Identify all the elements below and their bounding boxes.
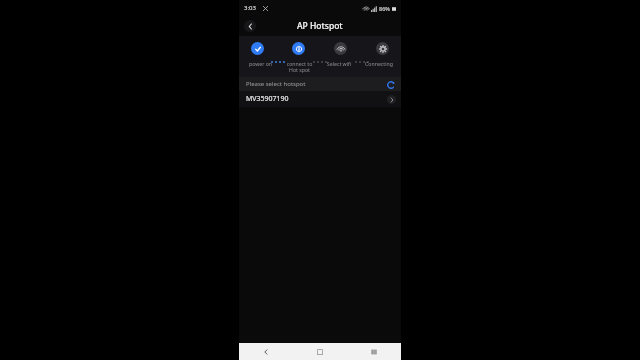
button[interactable]: Back (244, 20, 256, 32)
staticText: power on (241, 60, 280, 67)
staticText: AP Hotspot (297, 20, 343, 32)
button[interactable]: Step (376, 42, 389, 55)
staticText: 86% (379, 5, 390, 12)
button[interactable]: Step (251, 42, 264, 55)
staticText: connect to Hot spot (280, 60, 319, 74)
staticText: MV35907190 (246, 94, 289, 104)
button[interactable]: Step (292, 42, 305, 55)
button[interactable]: Step (334, 42, 347, 55)
staticText: Please select hotspot (246, 80, 306, 88)
staticText: 3:03 (244, 4, 256, 12)
staticText: Connecting (359, 60, 399, 67)
button[interactable]: MV35907190 (239, 91, 401, 107)
staticText: Select wifi (319, 60, 359, 67)
button[interactable]: Refresh (385, 79, 396, 90)
button[interactable]: Recents (347, 343, 401, 360)
button[interactable]: Home (293, 343, 347, 360)
button[interactable]: Back (239, 343, 293, 360)
